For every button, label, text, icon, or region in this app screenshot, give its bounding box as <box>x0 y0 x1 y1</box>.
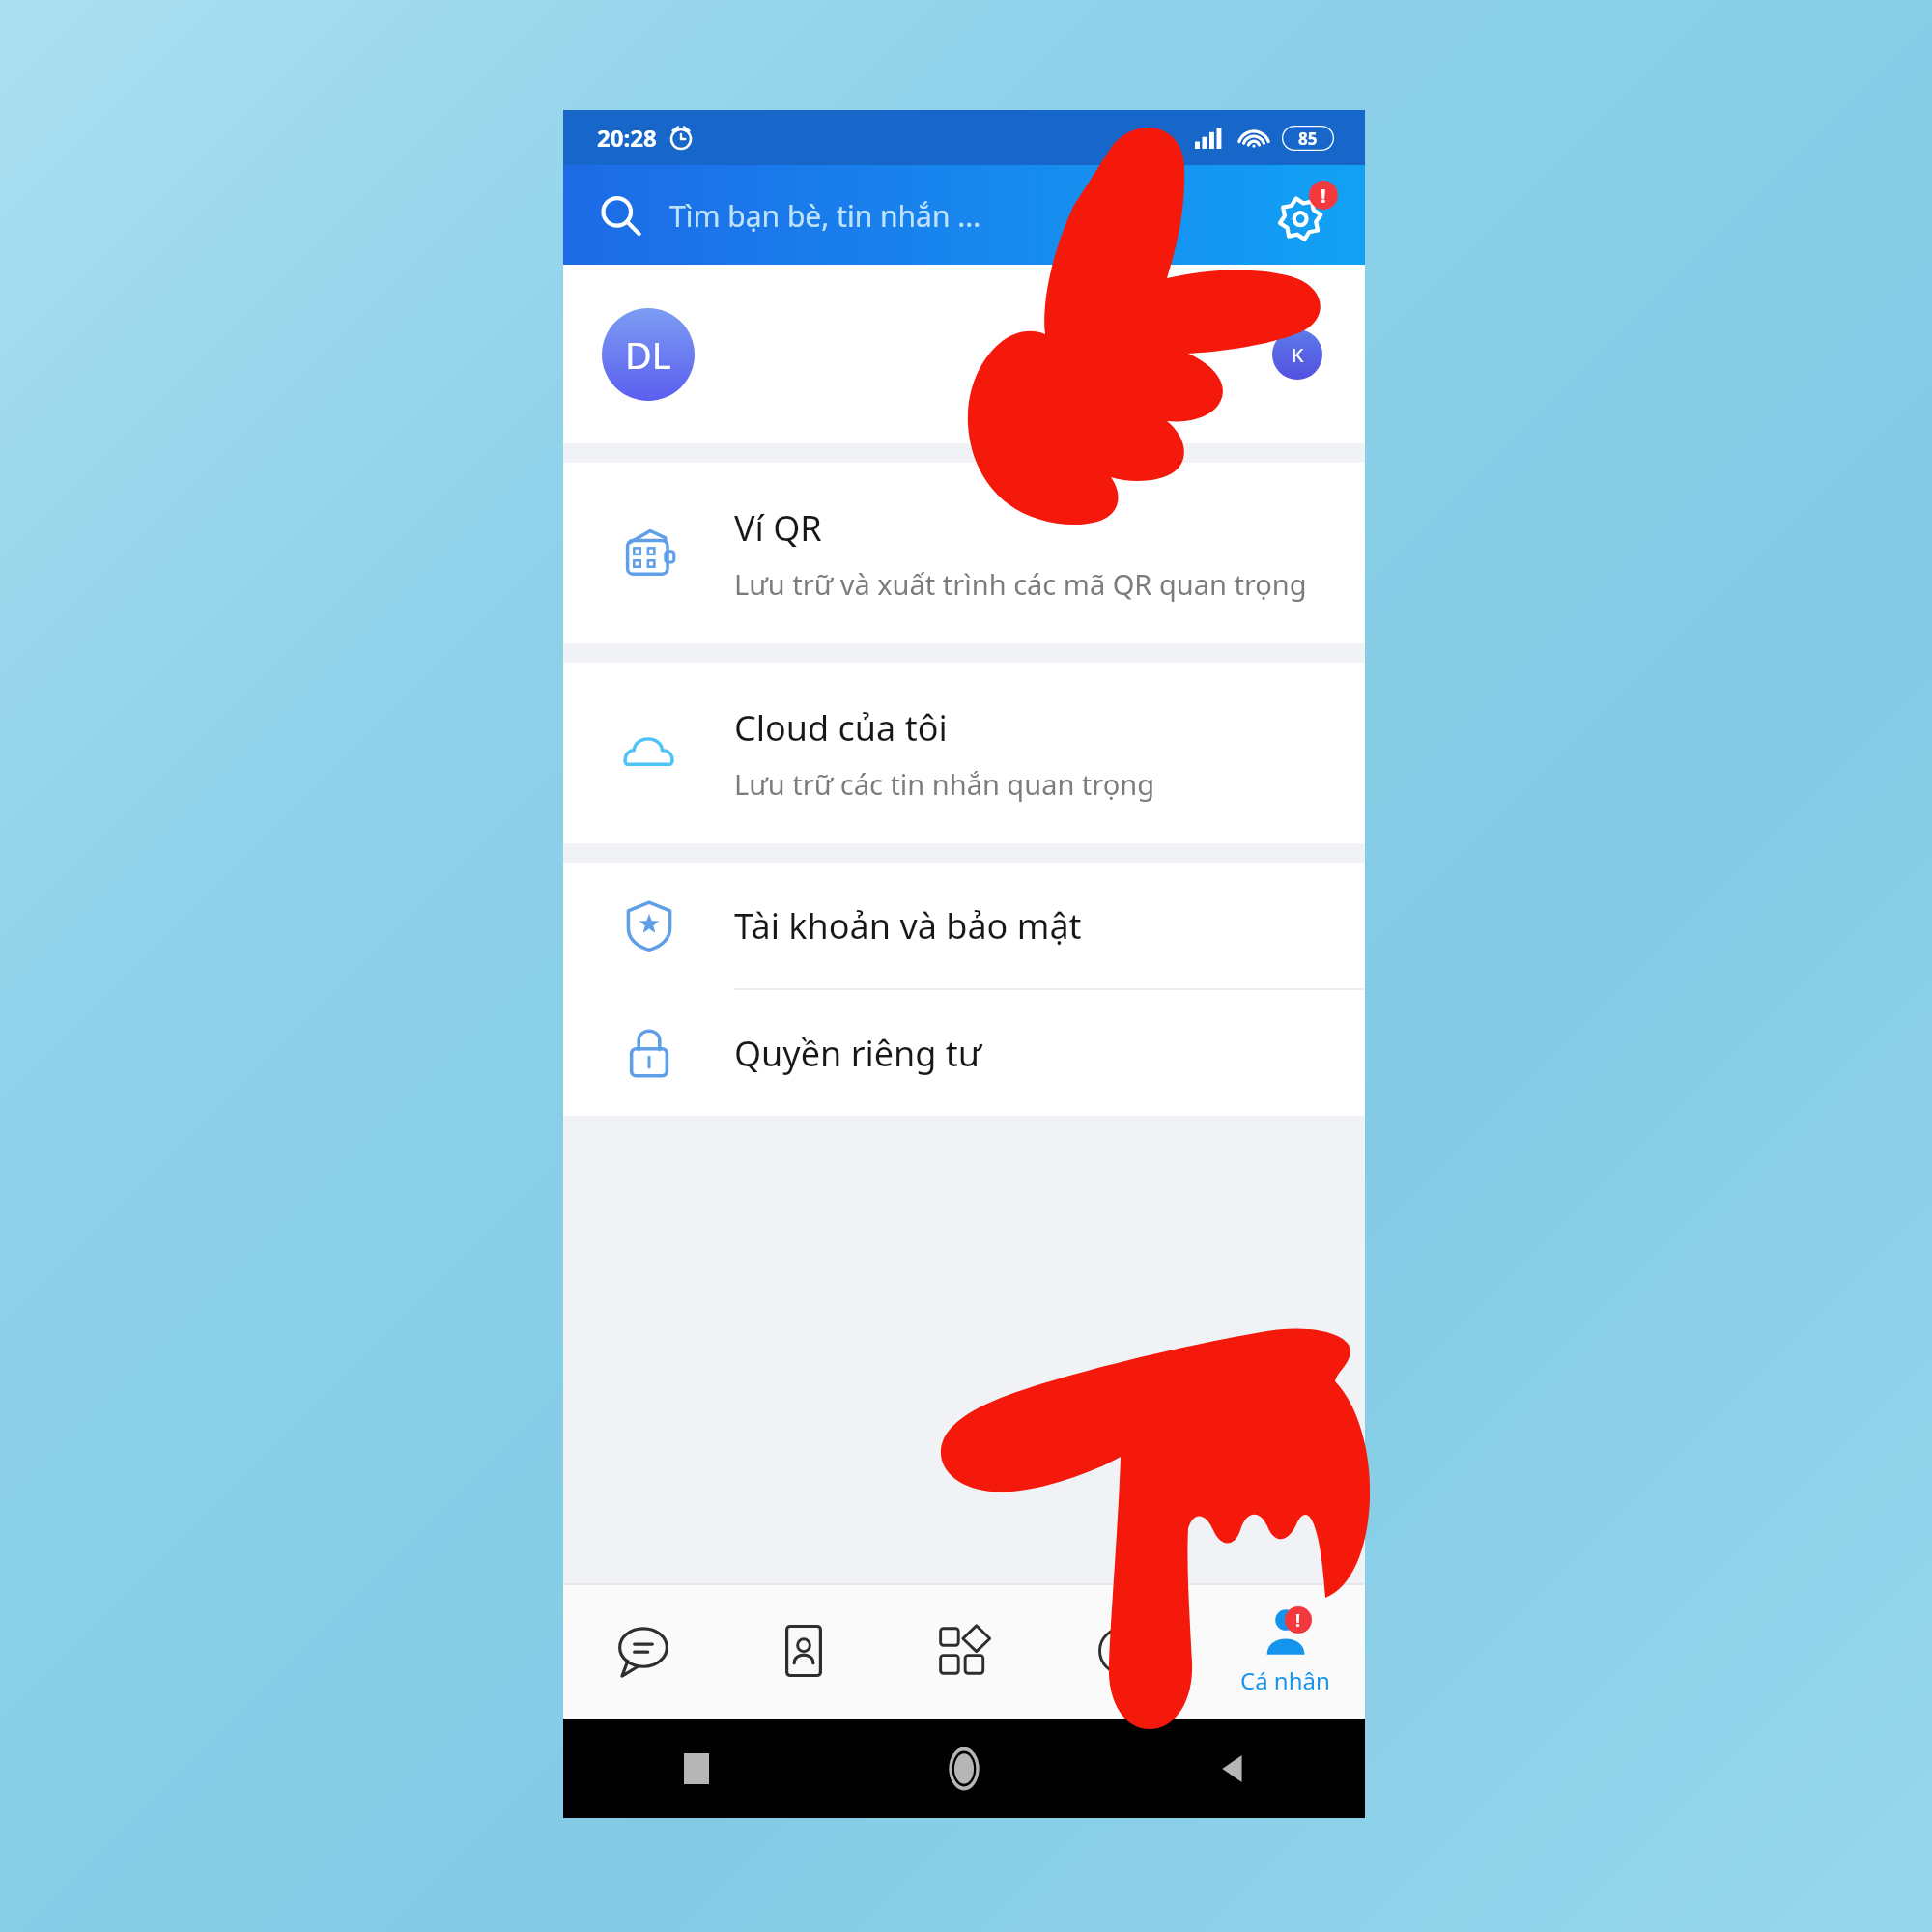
staticText: 20:28 <box>597 122 657 154</box>
button[interactable]: Recents <box>684 1753 709 1784</box>
staticText: Cloud của tôi <box>734 704 948 752</box>
staticText: ! <box>1295 1608 1301 1633</box>
button[interactable]: Ví QR <box>563 463 1365 643</box>
button[interactable]: Cá nhân <box>1205 1583 1365 1719</box>
staticText: Lưu trữ và xuất trình các mã QR quan trọ… <box>734 565 1307 603</box>
button[interactable]: Cloud của tôi <box>563 663 1365 843</box>
button[interactable]: Home <box>937 1742 991 1796</box>
staticText: Quyền riêng tư <box>734 1030 982 1077</box>
button[interactable]: Tài khoản và bảo mật <box>563 863 1365 988</box>
staticText: 85 <box>1298 128 1318 150</box>
staticText: Tìm bạn bè, tin nhắn ... <box>669 196 981 236</box>
staticText: DL <box>625 329 671 380</box>
button[interactable]: Back <box>1210 1747 1253 1790</box>
button[interactable]: Nhật ký <box>1044 1583 1205 1719</box>
button[interactable]: Danh bạ <box>724 1583 884 1719</box>
button[interactable]: Search <box>598 193 642 238</box>
button[interactable]: Tin nhắn <box>563 1583 724 1719</box>
button[interactable]: Quyền riêng tư <box>563 990 1365 1116</box>
staticText: Tài khoản và bảo mật <box>734 902 1082 950</box>
staticText: K <box>1292 342 1304 368</box>
button[interactable]: Khám phá <box>884 1583 1044 1719</box>
staticText: Ví QR <box>734 504 822 552</box>
staticText: Cá nhân <box>1240 1664 1330 1696</box>
staticText: Lưu trữ các tin nhắn quan trọng <box>734 765 1155 803</box>
button[interactable]: Settings <box>1268 181 1338 250</box>
staticText: ! <box>1321 183 1326 209</box>
button[interactable]: DL <box>563 265 1365 443</box>
